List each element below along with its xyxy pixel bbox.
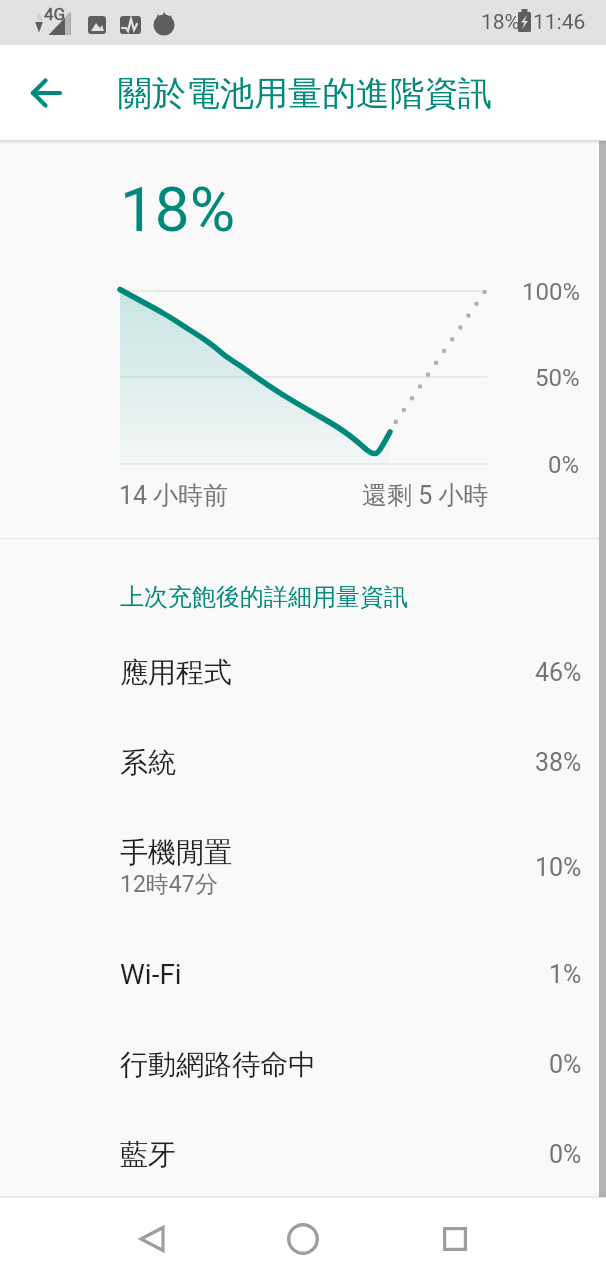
staticText: 應用程式: [120, 655, 232, 690]
button[interactable]: Wi-Fi: [0, 930, 606, 1018]
staticText: 4G: [44, 4, 66, 24]
staticText: Wi-Fi: [120, 958, 182, 991]
button[interactable]: Back: [18, 65, 74, 121]
staticText: 1%: [549, 960, 582, 989]
staticText: 還剩 5 小時: [362, 480, 489, 511]
staticText: 藍牙: [120, 1137, 176, 1172]
staticText: 100%: [522, 278, 581, 306]
button[interactable]: 手機閒置: [0, 808, 606, 926]
button[interactable]: 應用程式: [0, 628, 606, 716]
staticText: 12時47分: [120, 870, 218, 899]
staticText: 手機閒置: [120, 835, 232, 870]
button[interactable]: 系統: [0, 718, 606, 806]
staticText: 38%: [535, 748, 582, 777]
staticText: 18%: [481, 10, 520, 35]
staticText: 50%: [535, 364, 580, 392]
button[interactable]: Home: [272, 1208, 334, 1270]
staticText: 系統: [120, 745, 176, 780]
staticText: 18%: [120, 173, 236, 246]
staticText: 46%: [535, 658, 582, 687]
staticText: 0%: [549, 1050, 582, 1079]
staticText: 14 小時前: [119, 480, 229, 511]
button[interactable]: 行動網路待命中: [0, 1020, 606, 1108]
staticText: 0%: [549, 1140, 582, 1169]
staticText: 關於電池用量的進階資訊: [118, 72, 492, 115]
staticText: 行動網路待命中: [120, 1047, 316, 1082]
staticText: 11:46: [533, 10, 586, 35]
button[interactable]: Recent apps: [424, 1208, 486, 1270]
staticText: 10%: [535, 853, 582, 882]
button[interactable]: 藍牙: [0, 1110, 606, 1198]
staticText: 0%: [548, 451, 580, 479]
button[interactable]: Back: [121, 1208, 183, 1270]
staticText: 上次充飽後的詳細用量資訊: [120, 582, 408, 612]
